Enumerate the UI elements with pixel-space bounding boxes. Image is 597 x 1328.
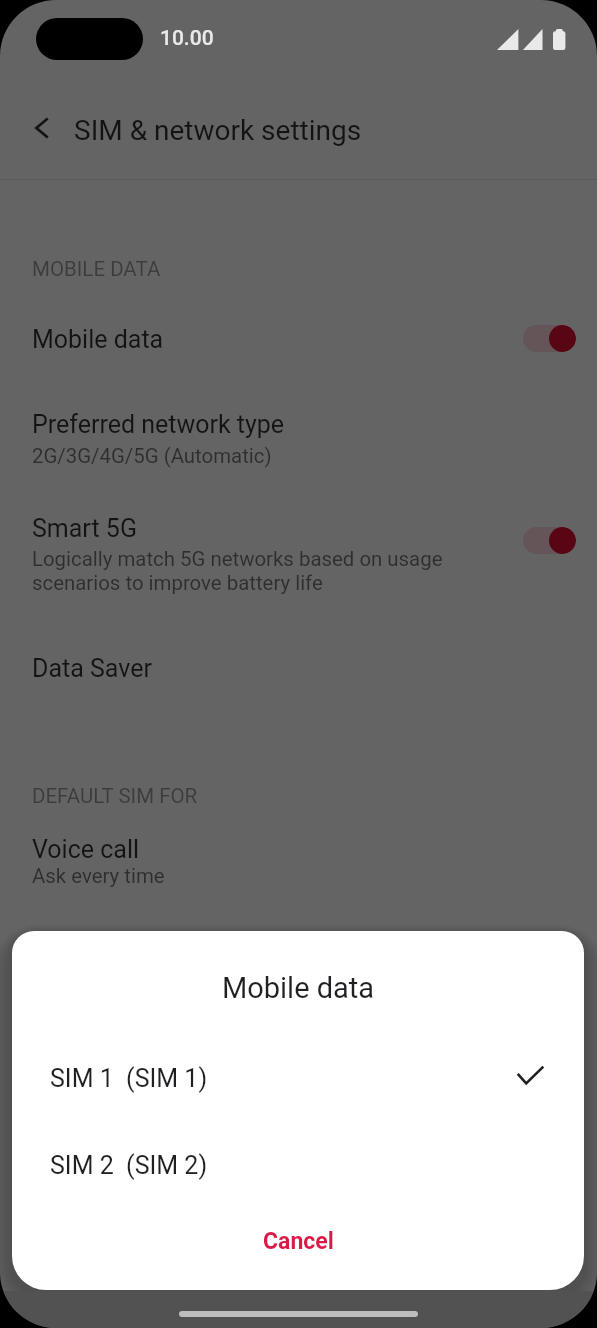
button[interactable]: Toggle switch (523, 527, 576, 554)
staticText: Mobile data (32, 325, 164, 354)
button[interactable]: Voice call (0, 825, 597, 903)
button[interactable]: Mobile data (0, 306, 597, 372)
button[interactable]: Back (19, 106, 63, 150)
staticText: Smart 5G (32, 514, 137, 543)
staticText: 2G/3G/4G/5G (Automatic) (32, 444, 272, 468)
staticText: 10.00 (160, 26, 214, 51)
staticText: DEFAULT SIM FOR (32, 784, 198, 808)
button[interactable]: SIM 1 (SIM 1) (12, 1036, 584, 1110)
button[interactable]: Cancel (12, 1201, 584, 1273)
staticText: SIM 2 (SIM 2) (50, 1151, 208, 1180)
button[interactable]: Preferred network type (0, 400, 597, 478)
staticText: Logically match 5G networks based on usa… (32, 547, 443, 595)
button[interactable]: Data Saver (0, 640, 597, 698)
staticText: MOBILE DATA (32, 257, 161, 281)
staticText: SIM 1 (SIM 1) (50, 1064, 208, 1093)
staticText: Preferred network type (32, 410, 285, 439)
staticText: SIM & network settings (74, 114, 362, 147)
button[interactable]: Toggle switch (523, 325, 576, 352)
staticText: Cancel (263, 1228, 334, 1255)
button[interactable]: SIM 2 (SIM 2) (12, 1123, 584, 1197)
staticText: Ask every time (32, 864, 165, 888)
button[interactable]: Smart 5G (0, 505, 597, 613)
staticText: Data Saver (32, 654, 152, 683)
staticText: Mobile data (12, 971, 584, 1005)
staticText: Voice call (32, 835, 140, 864)
